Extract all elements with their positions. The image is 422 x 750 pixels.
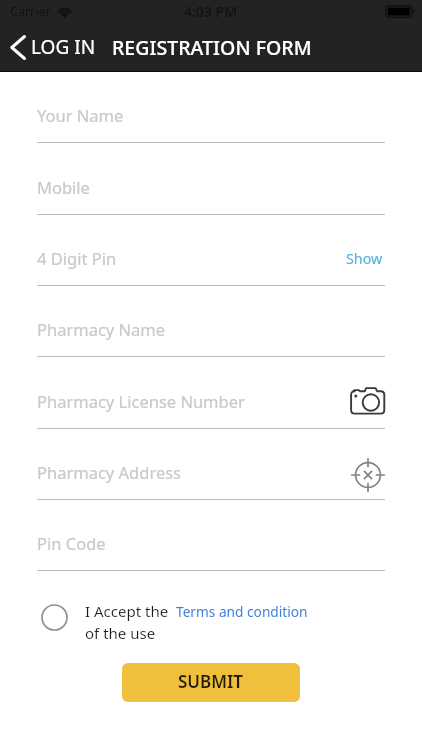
button[interactable]: Your Name (37, 100, 385, 143)
staticText: SUBMIT (178, 670, 244, 693)
button[interactable]: Terms and condition (176, 602, 308, 621)
button[interactable]: Pharmacy Name (37, 314, 385, 357)
button[interactable]: Take photo (350, 386, 386, 414)
button[interactable]: Show (342, 246, 387, 271)
staticText: Carrier (10, 3, 51, 20)
staticText: Pharmacy Name (37, 318, 166, 340)
button[interactable]: Use current location (351, 458, 385, 492)
button[interactable]: Pharmacy License Number (37, 386, 385, 429)
staticText: of the use (85, 623, 156, 643)
staticText: Pin Code (37, 532, 106, 554)
button[interactable]: SUBMIT (122, 663, 300, 702)
button[interactable]: 4 Digit Pin (37, 243, 385, 286)
staticText: 4 Digit Pin (37, 247, 117, 269)
button[interactable]: LOG IN (0, 30, 102, 64)
staticText: Pharmacy License Number (37, 390, 245, 412)
button[interactable]: Accept terms and conditions (41, 604, 68, 631)
button[interactable]: Pin Code (37, 528, 385, 571)
staticText: Your Name (37, 104, 124, 126)
staticText: REGISTRATION FORM (112, 34, 312, 61)
staticText: Mobile (37, 176, 90, 198)
staticText: Show (346, 249, 383, 268)
staticText: Terms and condition (176, 602, 308, 621)
staticText: 4:03 PM (184, 2, 238, 21)
staticText: LOG IN (31, 34, 96, 60)
staticText: I Accept the (85, 601, 169, 621)
button[interactable]: Pharmacy Address (37, 457, 385, 500)
button[interactable]: Mobile (37, 172, 385, 215)
staticText: Pharmacy Address (37, 461, 181, 483)
